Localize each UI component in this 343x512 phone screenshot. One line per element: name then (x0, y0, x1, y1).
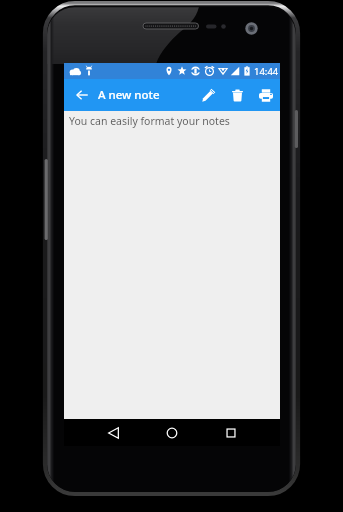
button[interactable]: Navigate up (69, 79, 94, 111)
staticText: A new note (98, 87, 160, 103)
button[interactable]: Back (97, 419, 129, 446)
button[interactable]: Recents (215, 419, 247, 446)
staticText: 14:44 (254, 65, 279, 78)
button[interactable]: Delete (224, 79, 251, 111)
button[interactable]: Print (252, 79, 279, 111)
button[interactable]: Home (156, 419, 188, 446)
button[interactable]: Edit (195, 79, 222, 111)
button[interactable]: A new note (98, 79, 160, 111)
staticText: You can easily format your notes (69, 114, 230, 128)
